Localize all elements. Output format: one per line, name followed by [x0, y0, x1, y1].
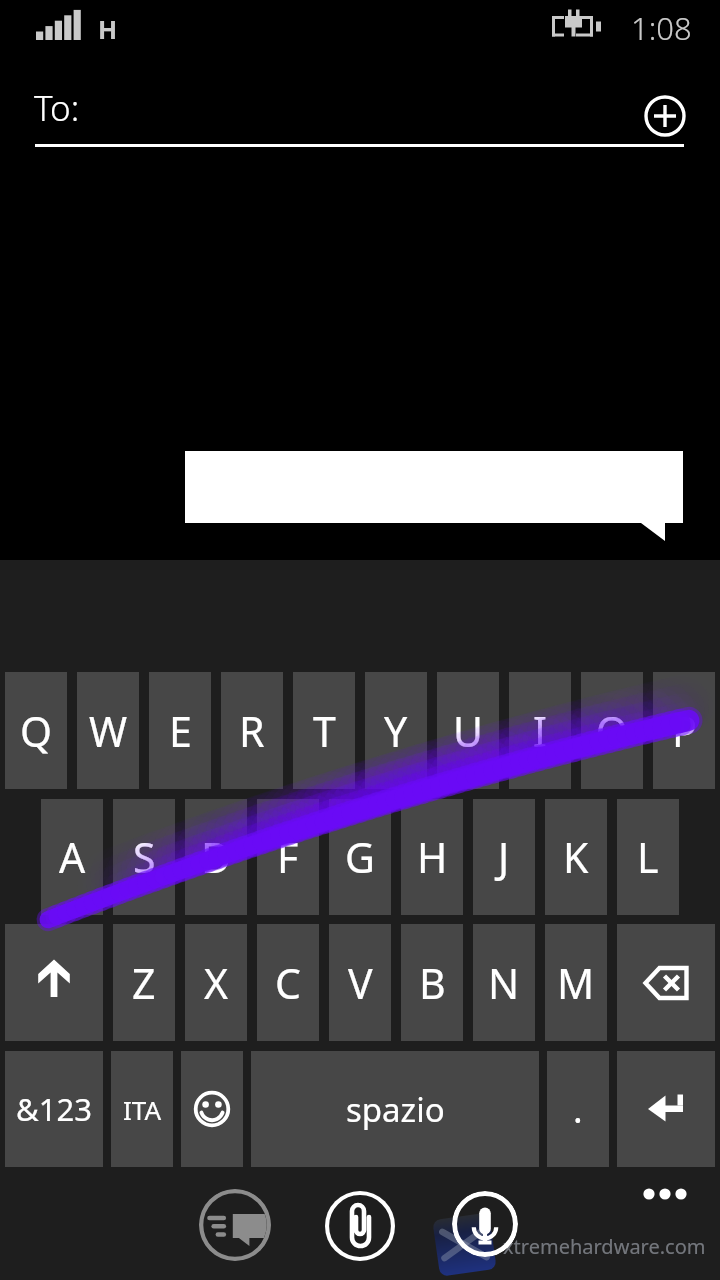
button[interactable]: J — [473, 799, 535, 915]
button[interactable]: S — [113, 799, 175, 915]
button[interactable]: I — [509, 672, 571, 789]
button[interactable]: More options — [634, 1174, 696, 1216]
staticText: R — [239, 703, 265, 759]
staticText: S — [133, 829, 156, 885]
staticText: D — [201, 829, 231, 885]
staticText: I — [533, 703, 547, 759]
button[interactable]: Quick reply — [199, 1189, 271, 1261]
button[interactable]: spazio — [251, 1051, 539, 1167]
button[interactable]: O — [581, 672, 643, 789]
button[interactable]: E — [149, 672, 211, 789]
staticText: Q — [20, 703, 53, 759]
button[interactable]: C — [257, 924, 319, 1041]
button[interactable]: M — [545, 924, 607, 1041]
button[interactable]: Attach — [325, 1191, 395, 1261]
button[interactable]: L — [617, 799, 679, 915]
staticText: &123 — [16, 1088, 92, 1130]
button[interactable]: Backspace — [617, 924, 715, 1041]
staticText: O — [596, 703, 629, 759]
button[interactable]: Add recipient — [642, 93, 688, 139]
button[interactable]: F — [257, 799, 319, 915]
button[interactable]: U — [437, 672, 499, 789]
staticText: H — [417, 829, 448, 885]
staticText: P — [672, 703, 697, 759]
button[interactable]: N — [473, 924, 535, 1041]
staticText: N — [488, 955, 520, 1011]
staticText: Y — [384, 703, 408, 759]
staticText: H — [98, 12, 118, 46]
staticText: V — [348, 955, 373, 1011]
button[interactable]: G — [329, 799, 391, 915]
staticText: L — [637, 829, 659, 885]
staticText: spazio — [346, 1087, 445, 1132]
staticText: A — [59, 829, 86, 885]
button[interactable]: A — [41, 799, 103, 915]
button[interactable]: Emoji — [181, 1051, 243, 1167]
button[interactable]: R — [221, 672, 283, 789]
button[interactable]: Z — [113, 924, 175, 1041]
staticText: ITA — [123, 1092, 162, 1127]
staticText: T — [313, 703, 336, 759]
button[interactable]: B — [401, 924, 463, 1041]
staticText: G — [345, 829, 375, 885]
button[interactable]: H — [401, 799, 463, 915]
staticText: F — [277, 829, 299, 885]
staticText: W — [89, 703, 128, 759]
button[interactable]: Voice input — [452, 1191, 518, 1257]
staticText: . — [573, 1085, 583, 1134]
button[interactable]: . — [547, 1051, 609, 1167]
button[interactable]: Shift — [5, 924, 103, 1041]
staticText: 1:08 — [631, 7, 692, 49]
staticText: To: — [34, 84, 80, 132]
button[interactable]: D — [185, 799, 247, 915]
button[interactable]: Y — [365, 672, 427, 789]
button[interactable]: V — [329, 924, 391, 1041]
staticText: B — [419, 955, 446, 1011]
button[interactable]: ITA — [111, 1051, 173, 1167]
button[interactable]: W — [77, 672, 139, 789]
staticText: xtremehardware.com — [503, 1233, 706, 1260]
button[interactable]: X — [185, 924, 247, 1041]
staticText: K — [563, 829, 589, 885]
button[interactable]: Q — [5, 672, 67, 789]
button[interactable]: K — [545, 799, 607, 915]
staticText: J — [498, 829, 510, 885]
button[interactable]: T — [293, 672, 355, 789]
staticText: Z — [132, 955, 156, 1011]
staticText: E — [169, 703, 192, 759]
staticText: M — [557, 955, 595, 1011]
button[interactable]: Enter — [617, 1051, 715, 1167]
staticText: X — [204, 955, 229, 1011]
button[interactable]: P — [653, 672, 715, 789]
staticText: C — [275, 955, 301, 1011]
staticText: U — [453, 703, 483, 759]
button[interactable]: &123 — [5, 1051, 103, 1167]
